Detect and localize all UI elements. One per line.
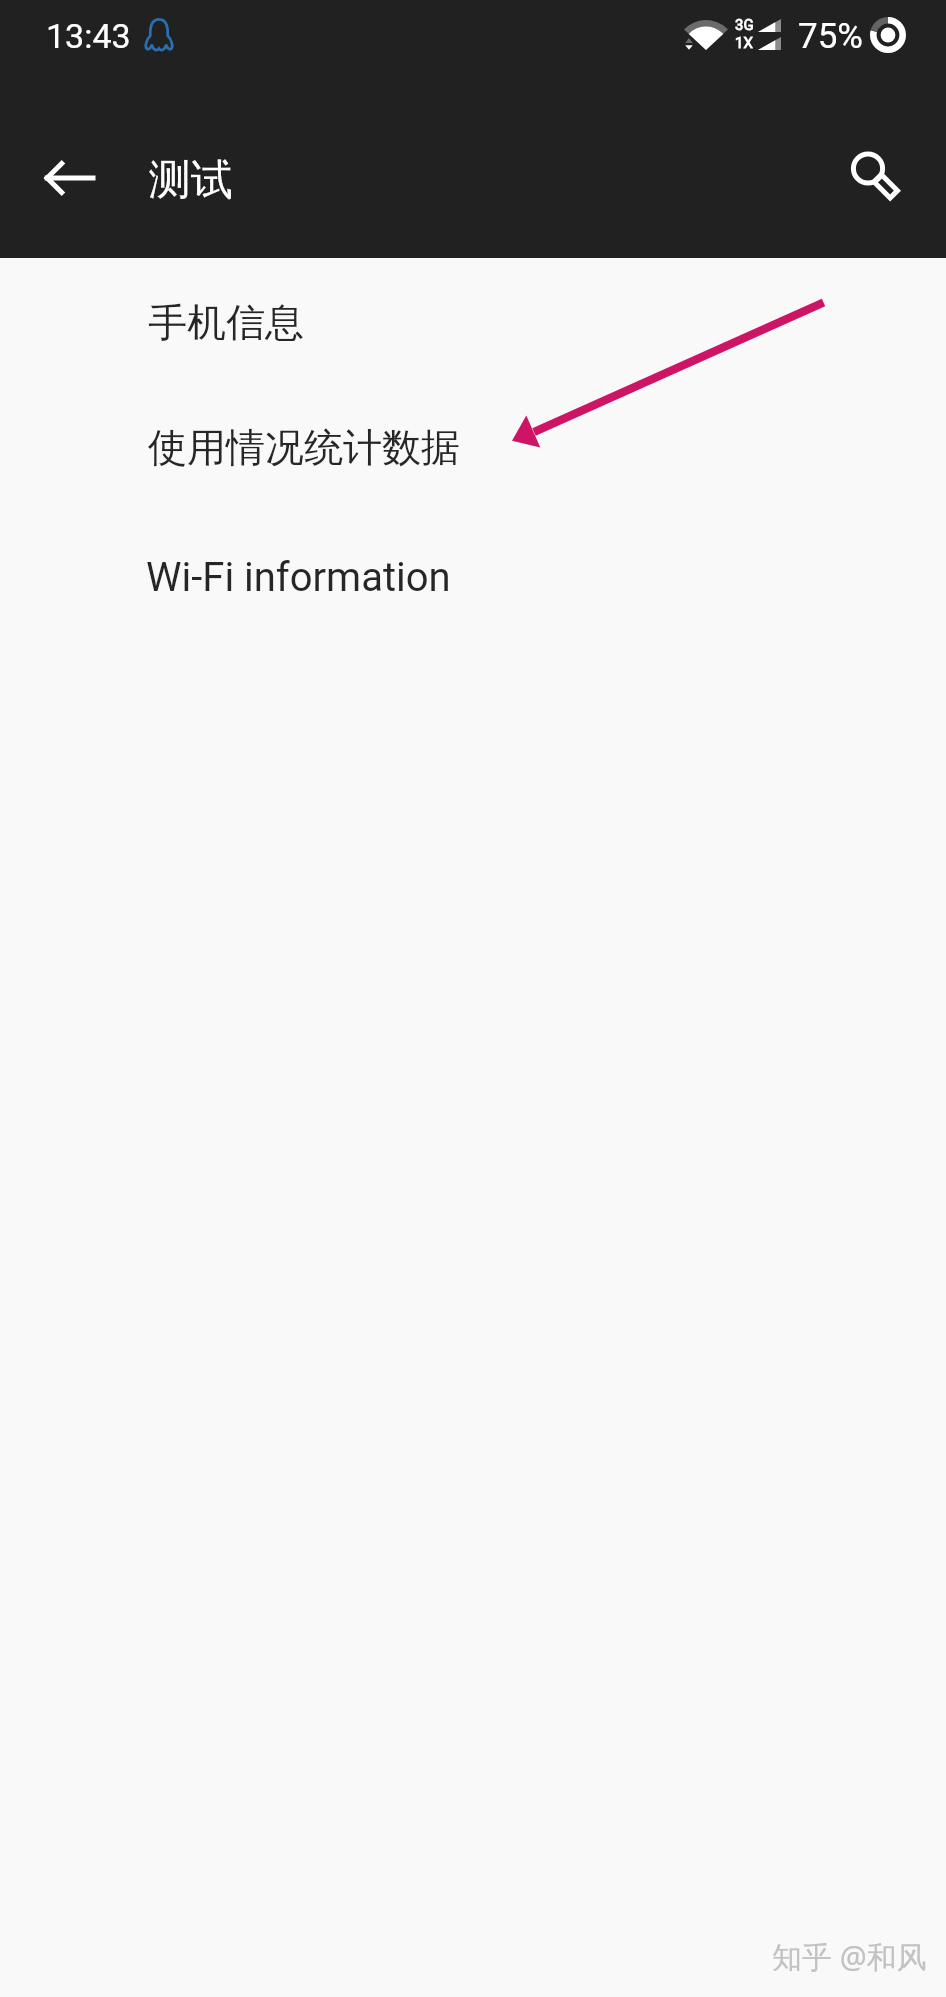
staticText: 使用情况统计数据 [148, 423, 460, 472]
staticText: 13:43 [46, 16, 131, 56]
staticText: 75% [798, 16, 863, 57]
staticText: 手机信息 [148, 298, 304, 347]
staticText: Wi-Fi information [146, 554, 451, 601]
staticText: 3G [735, 16, 754, 34]
button[interactable]: 使用情况统计数据 [0, 385, 946, 510]
button[interactable]: Back [25, 137, 109, 221]
staticText: 测试 [149, 154, 233, 207]
button[interactable]: Wi-Fi information [0, 515, 946, 640]
button[interactable]: 手机信息 [0, 260, 946, 385]
staticText: 1X [735, 34, 753, 52]
button[interactable]: Search [838, 138, 904, 204]
staticText: 知乎 @和风 [772, 1936, 927, 1977]
